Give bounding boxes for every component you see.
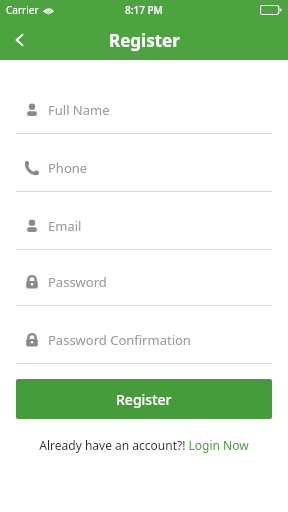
staticText: Password Confirmation [48, 331, 191, 349]
button[interactable]: Password Confirmation [0, 316, 288, 364]
staticText: Register [109, 29, 180, 52]
button[interactable]: Phone [0, 144, 288, 192]
staticText: Already have an account?! Login Now [39, 437, 249, 453]
button[interactable]: Email [0, 202, 288, 250]
staticText: Email [48, 217, 82, 235]
staticText: Full Name [48, 101, 110, 119]
staticText: Register [116, 390, 172, 409]
staticText: Password [48, 273, 107, 291]
staticText: Phone [48, 159, 88, 177]
staticText: Carrier [6, 3, 39, 17]
staticText: 8:17 PM [125, 3, 163, 17]
button[interactable]: Back [0, 20, 40, 60]
button[interactable]: Already have an account?! Login Now [0, 437, 288, 453]
button[interactable]: Full Name [0, 86, 288, 134]
button[interactable]: Password [0, 258, 288, 306]
button[interactable]: Register [16, 379, 272, 419]
